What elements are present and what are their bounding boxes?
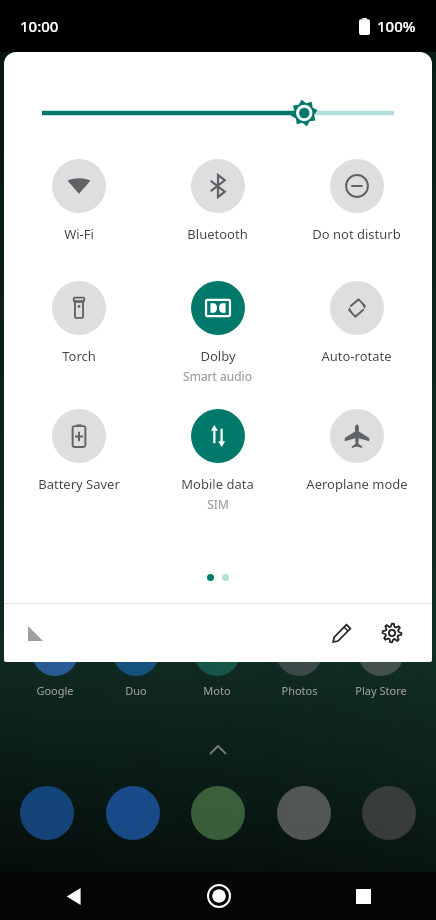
button[interactable] (106, 786, 160, 840)
staticText: Torch (62, 347, 96, 365)
button[interactable] (191, 786, 245, 840)
button[interactable]: Aeroplane mode (287, 407, 426, 495)
button[interactable]: Home (146, 872, 291, 920)
staticText: 100% (377, 16, 416, 36)
button[interactable]: Settings (372, 613, 412, 653)
button[interactable] (277, 786, 331, 840)
button[interactable]: Brightness (4, 98, 432, 128)
staticText: SIM (207, 496, 229, 512)
staticText: Battery Saver (38, 475, 120, 493)
staticText: Smart audio (183, 368, 252, 384)
staticText: Photos (281, 683, 318, 698)
button[interactable]: Torch (10, 279, 148, 367)
staticText: Bluetooth (187, 225, 248, 243)
button[interactable]: Auto-rotate (287, 279, 426, 367)
button[interactable]: Bluetooth (148, 157, 287, 245)
button[interactable]: Do not disturb (287, 157, 426, 245)
staticText: Google (36, 683, 74, 698)
staticText: Play Store (355, 683, 407, 698)
button[interactable]: Edit tiles (322, 613, 362, 653)
staticText: Mobile data (181, 475, 254, 493)
button[interactable]: Recent apps (291, 872, 436, 920)
button[interactable] (20, 786, 74, 840)
button[interactable]: Mobile data (148, 407, 287, 514)
staticText: 10:00 (20, 16, 59, 36)
staticText: Wi-Fi (64, 225, 94, 243)
button[interactable]: Signal strength (18, 616, 52, 650)
staticText: Dolby (200, 347, 236, 365)
button[interactable]: Battery Saver (10, 407, 148, 495)
staticText: Aeroplane mode (306, 475, 408, 493)
staticText: Duo (125, 683, 147, 698)
button[interactable]: Dolby (148, 279, 287, 386)
staticText: Auto-rotate (321, 347, 392, 365)
staticText: Moto (203, 683, 231, 698)
staticText: Do not disturb (312, 225, 401, 243)
button[interactable]: Back (0, 872, 146, 920)
button[interactable] (362, 786, 416, 840)
button[interactable]: Wi-Fi (10, 157, 148, 245)
